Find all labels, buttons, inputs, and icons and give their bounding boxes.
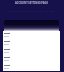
button[interactable] xyxy=(3,55,60,63)
button[interactable] xyxy=(3,31,60,39)
button[interactable] xyxy=(3,47,60,55)
button[interactable] xyxy=(3,63,60,71)
staticText: ACCOUNT SETTINGS PAGE xyxy=(3,1,60,5)
button[interactable] xyxy=(3,39,60,47)
